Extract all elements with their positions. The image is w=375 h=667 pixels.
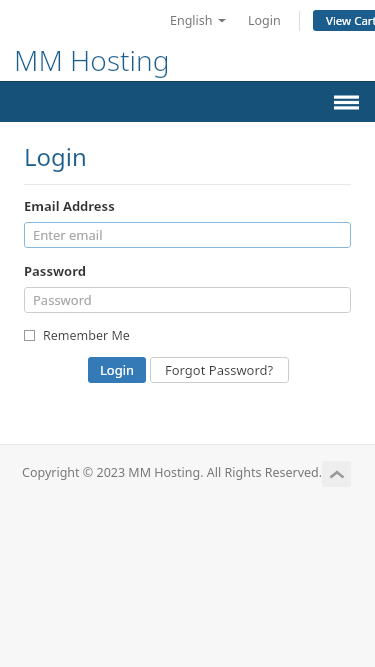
- staticText: Forgot Password?: [165, 361, 274, 379]
- staticText: View Cart: [326, 13, 375, 29]
- button[interactable]: Forgot Password?: [150, 357, 289, 383]
- button[interactable]: Enter email: [24, 222, 351, 248]
- button[interactable]: Login: [244, 8, 285, 33]
- button[interactable]: Open menu: [332, 90, 360, 114]
- button[interactable]: Scroll to top: [322, 461, 351, 487]
- staticText: Login: [100, 361, 135, 379]
- button[interactable]: Remember Me: [24, 327, 130, 344]
- button[interactable]: English: [166, 8, 230, 33]
- staticText: English: [170, 12, 213, 29]
- staticText: Password: [33, 291, 92, 309]
- staticText: Password: [24, 262, 86, 280]
- staticText: Copyright © 2023 MM Hosting. All Rights …: [22, 464, 323, 481]
- button[interactable]: MM Hosting: [14, 41, 170, 79]
- staticText: Remember Me: [43, 327, 130, 344]
- button[interactable]: View Cart: [313, 10, 375, 31]
- staticText: Email Address: [24, 197, 115, 215]
- button[interactable]: Password: [24, 287, 351, 313]
- button[interactable]: Login: [88, 357, 146, 383]
- staticText: Login: [24, 140, 87, 173]
- staticText: Enter email: [33, 226, 103, 244]
